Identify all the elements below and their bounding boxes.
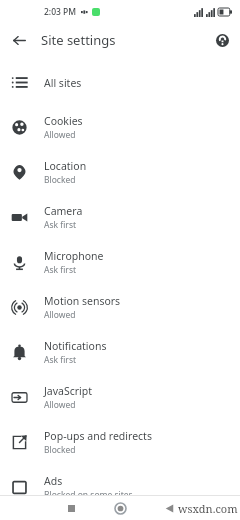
button[interactable]: Ads [0, 465, 240, 510]
staticText: All sites [44, 76, 82, 90]
button[interactable]: JavaScript [0, 375, 240, 420]
staticText: Site settings [41, 31, 116, 49]
button[interactable]: Background sync [0, 510, 240, 520]
button[interactable]: Camera [0, 195, 240, 240]
staticText: Blocked on some sites [44, 489, 133, 501]
button[interactable]: Help [211, 29, 233, 51]
button[interactable]: Recent apps [62, 499, 80, 517]
button[interactable]: Location [0, 150, 240, 195]
staticText: Motion sensors [44, 294, 121, 308]
staticText: Background sync [44, 510, 129, 520]
staticText: Camera [44, 204, 83, 218]
button[interactable]: Home [111, 499, 129, 517]
button[interactable]: All sites [0, 60, 240, 105]
staticText: Notifications [44, 339, 107, 353]
staticText: Allowed [44, 309, 76, 321]
button[interactable]: Notifications [0, 330, 240, 375]
staticText: 2:03 PM [44, 6, 77, 18]
button[interactable]: Back [160, 499, 178, 517]
staticText: wsxdn.com [178, 501, 238, 516]
staticText: Cookies [44, 114, 83, 128]
staticText: Blocked [44, 444, 76, 456]
button[interactable]: Cookies [0, 105, 240, 150]
staticText: Ads [44, 474, 63, 488]
button[interactable]: Pop-ups and redirects [0, 420, 240, 465]
staticText: Pop-ups and redirects [44, 429, 152, 443]
staticText: Microphone [44, 249, 104, 263]
staticText: JavaScript [44, 384, 93, 398]
button[interactable]: Back [8, 29, 30, 51]
button[interactable]: Microphone [0, 240, 240, 285]
staticText: Ask first [44, 264, 77, 276]
staticText: Ask first [44, 219, 77, 231]
staticText: Allowed [44, 399, 76, 411]
button[interactable]: Motion sensors [0, 285, 240, 330]
staticText: Location [44, 159, 87, 173]
staticText: Ask first [44, 354, 77, 366]
staticText: Blocked [44, 174, 76, 186]
staticText: Allowed [44, 129, 76, 141]
